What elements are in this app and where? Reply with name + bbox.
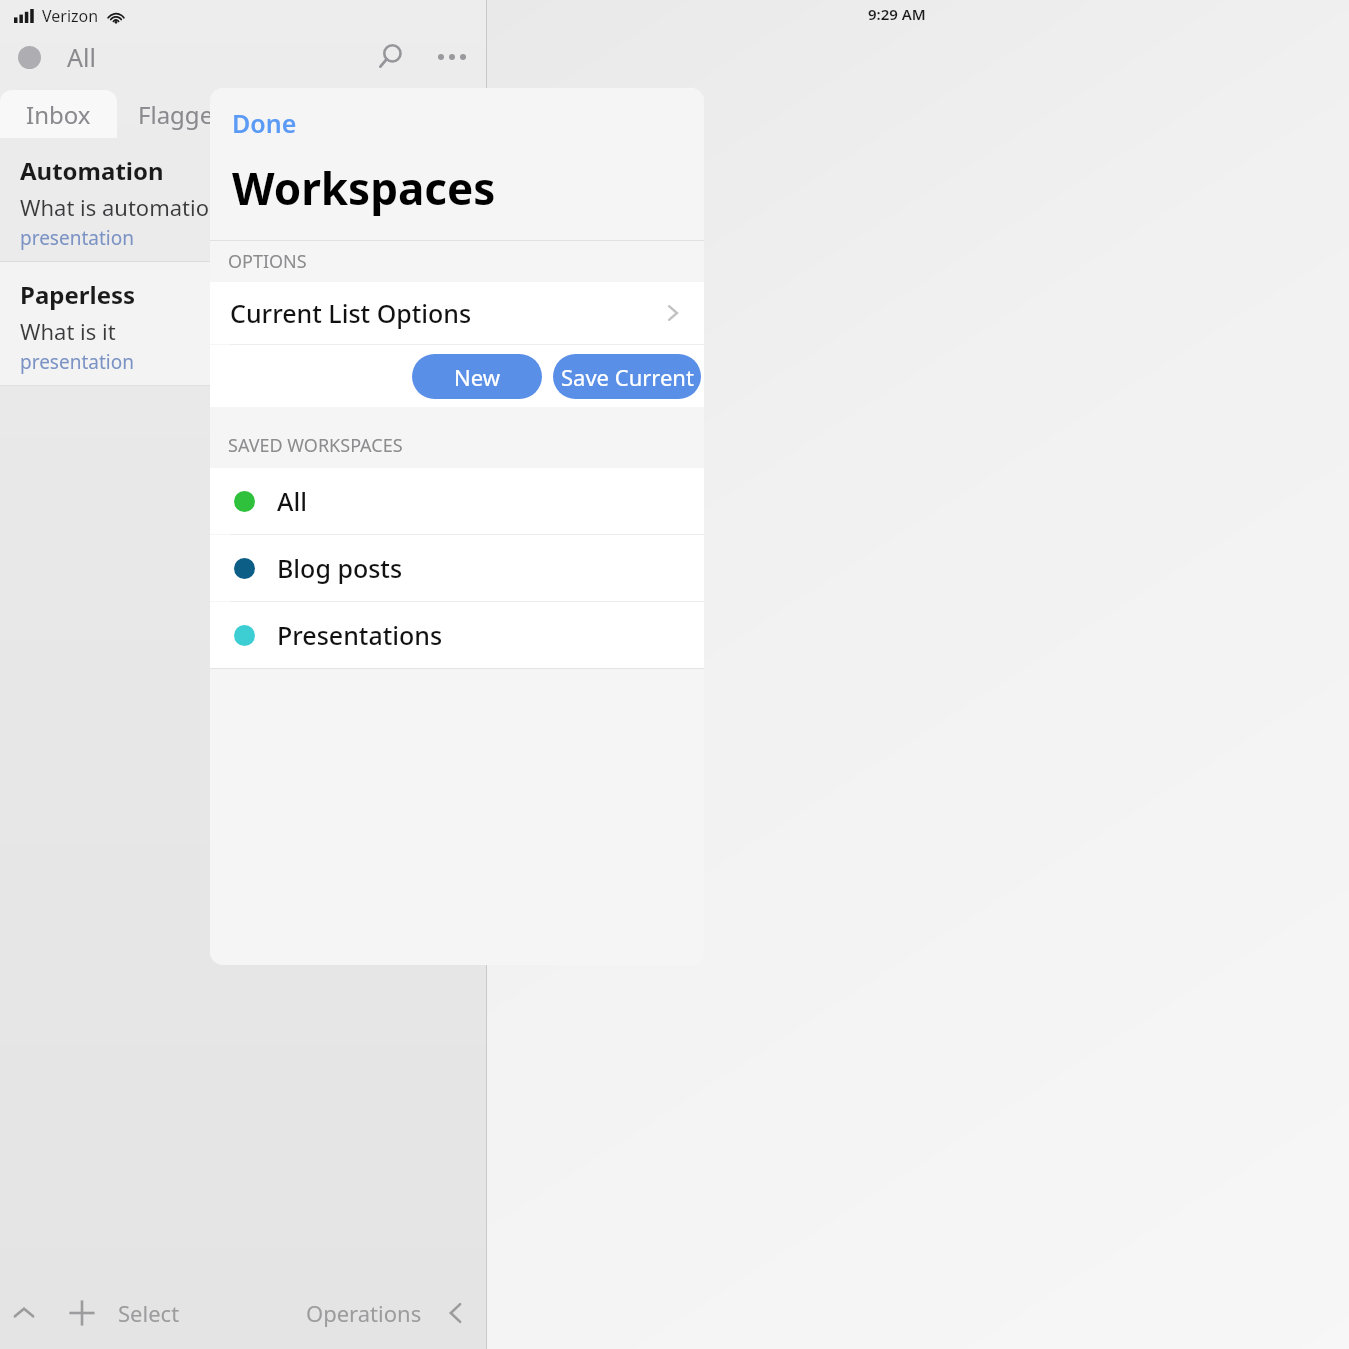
button[interactable]: Back bbox=[434, 1291, 478, 1335]
staticText: What is it bbox=[20, 316, 116, 346]
staticText: Select bbox=[118, 1298, 180, 1328]
staticText: New bbox=[454, 362, 500, 392]
button[interactable]: All bbox=[210, 468, 704, 534]
staticText: Workspaces bbox=[232, 158, 496, 218]
staticText: presentation bbox=[20, 349, 134, 375]
staticText: All bbox=[277, 484, 307, 518]
staticText: Presentations bbox=[277, 618, 443, 652]
staticText: OPTIONS bbox=[228, 249, 307, 274]
staticText: Verizon bbox=[42, 5, 99, 27]
button[interactable]: All bbox=[0, 30, 486, 84]
staticText: Paperless bbox=[20, 278, 136, 311]
button[interactable]: Select bbox=[112, 1290, 186, 1336]
staticText: Current List Options bbox=[230, 296, 472, 330]
button[interactable]: More options bbox=[430, 35, 474, 79]
button[interactable]: Done bbox=[210, 102, 309, 144]
staticText: presentation bbox=[20, 225, 134, 251]
button[interactable]: Paperless bbox=[0, 262, 486, 385]
staticText: All bbox=[67, 40, 96, 74]
button[interactable]: Current List Options bbox=[210, 282, 704, 344]
staticText: Operations bbox=[306, 1298, 422, 1328]
button[interactable]: Presentations bbox=[210, 602, 704, 668]
button[interactable]: Save Current bbox=[553, 354, 701, 399]
button[interactable]: Automation bbox=[0, 138, 486, 261]
button[interactable]: Inbox bbox=[0, 90, 117, 138]
staticText: What is automation bbox=[20, 192, 223, 222]
button[interactable]: Add bbox=[58, 1289, 106, 1337]
button[interactable]: Collapse bbox=[0, 1289, 48, 1337]
staticText: 9:29 AM bbox=[868, 4, 926, 24]
staticText: Flagge bbox=[138, 98, 214, 131]
staticText: Blog posts bbox=[277, 551, 403, 585]
staticText: Save Current bbox=[561, 362, 694, 392]
button[interactable]: Operations bbox=[300, 1290, 428, 1336]
staticText: Automation bbox=[20, 154, 164, 187]
button[interactable]: Search bbox=[368, 35, 412, 79]
staticText: SAVED WORKSPACES bbox=[228, 433, 403, 458]
button[interactable]: Blog posts bbox=[210, 535, 704, 601]
button[interactable]: New bbox=[412, 354, 542, 399]
button[interactable]: Flagge bbox=[117, 90, 234, 138]
staticText: Done bbox=[232, 106, 297, 140]
staticText: Inbox bbox=[26, 98, 91, 131]
